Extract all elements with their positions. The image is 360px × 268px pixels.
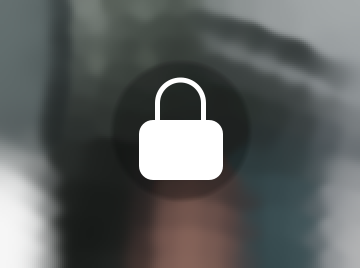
button[interactable]: Locked — tap to unlock [0,0,360,268]
